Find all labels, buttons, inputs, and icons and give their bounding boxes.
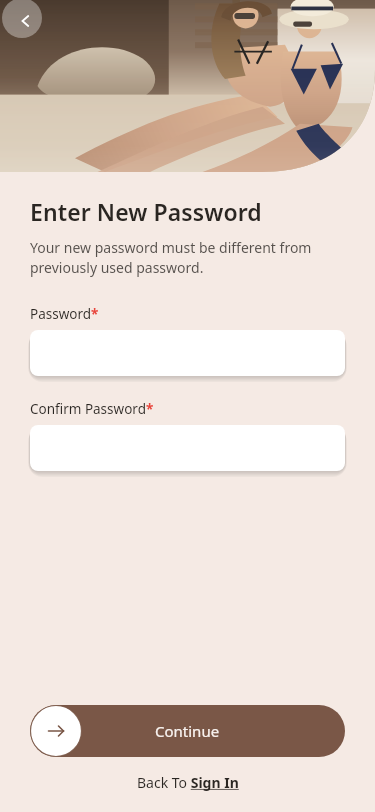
staticText: Confirm Password* xyxy=(30,400,154,418)
button[interactable]: Back xyxy=(2,0,42,38)
button[interactable] xyxy=(30,330,345,380)
other: Continue xyxy=(30,705,82,757)
staticText: Back To Sign In xyxy=(137,773,239,792)
staticText: Your new password must be different from… xyxy=(30,238,345,278)
button[interactable] xyxy=(30,425,345,475)
staticText: Enter New Password xyxy=(30,196,262,227)
staticText: Password* xyxy=(30,305,99,323)
button[interactable]: Continue xyxy=(30,705,345,757)
staticText: Continue xyxy=(155,721,220,741)
button[interactable]: Back To Sign In xyxy=(131,769,245,796)
